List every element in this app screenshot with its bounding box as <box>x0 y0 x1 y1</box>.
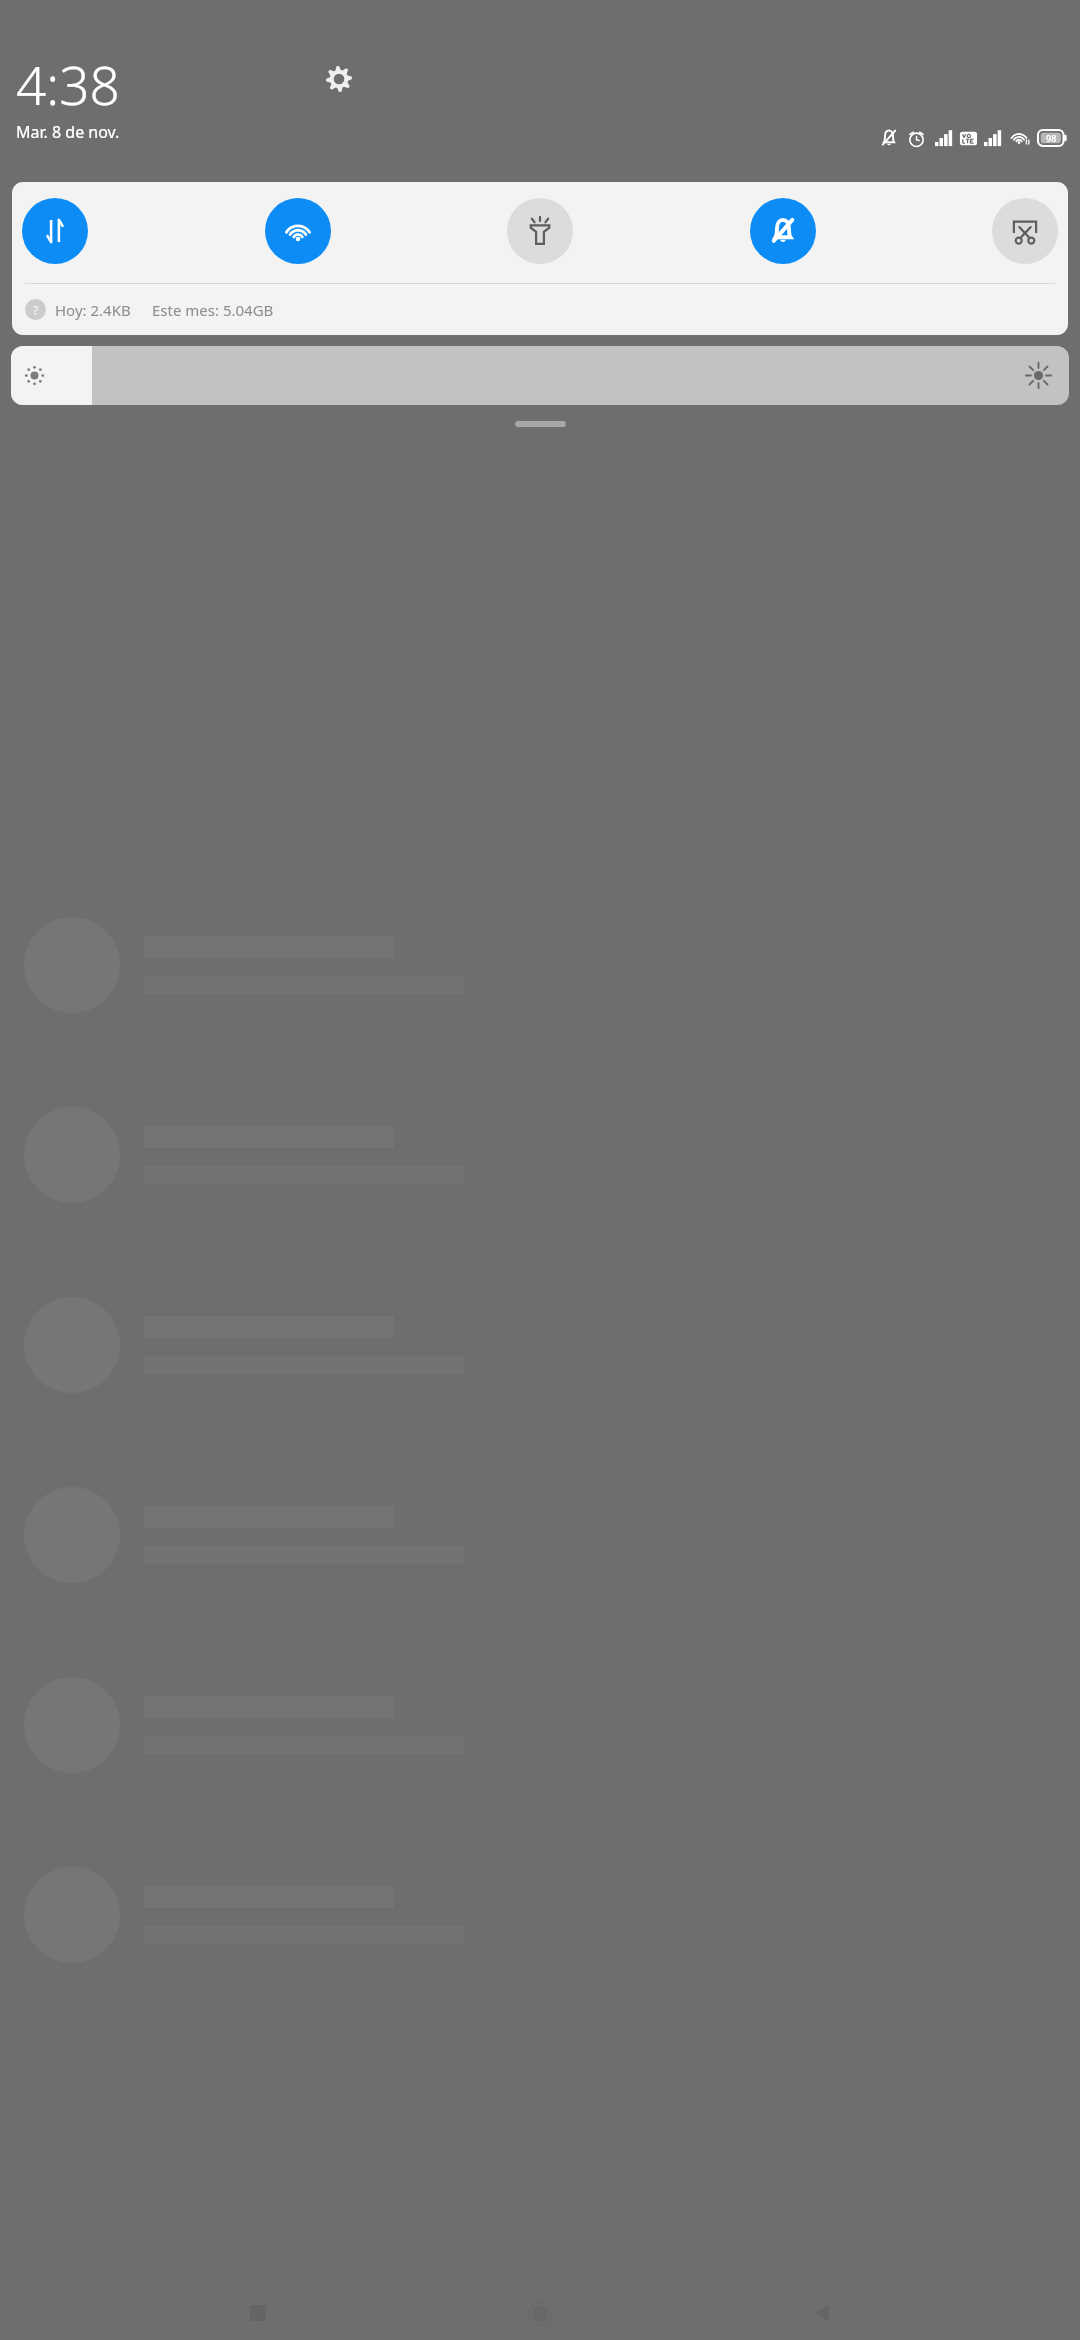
staticText: ? <box>33 302 39 318</box>
staticText: Mar. 8 de nov. <box>16 121 120 143</box>
button[interactable]: Silent mode <box>750 198 816 264</box>
button[interactable]: Screenshot <box>992 198 1058 264</box>
button[interactable]: Flashlight <box>507 198 573 264</box>
staticText: 98 <box>1046 132 1057 144</box>
button[interactable]: ? <box>25 284 1068 335</box>
button[interactable]: Settings <box>318 58 360 100</box>
staticText: 4:38 <box>16 48 120 120</box>
staticText: Este mes: 5.04GB <box>152 300 274 320</box>
button[interactable]: Mobile data <box>22 198 88 264</box>
button[interactable]: Expand panel <box>515 421 566 427</box>
button[interactable]: Wi-Fi <box>265 198 331 264</box>
button[interactable]: Brightness <box>11 346 1069 405</box>
staticText: Hoy: 2.4KB <box>55 300 131 320</box>
